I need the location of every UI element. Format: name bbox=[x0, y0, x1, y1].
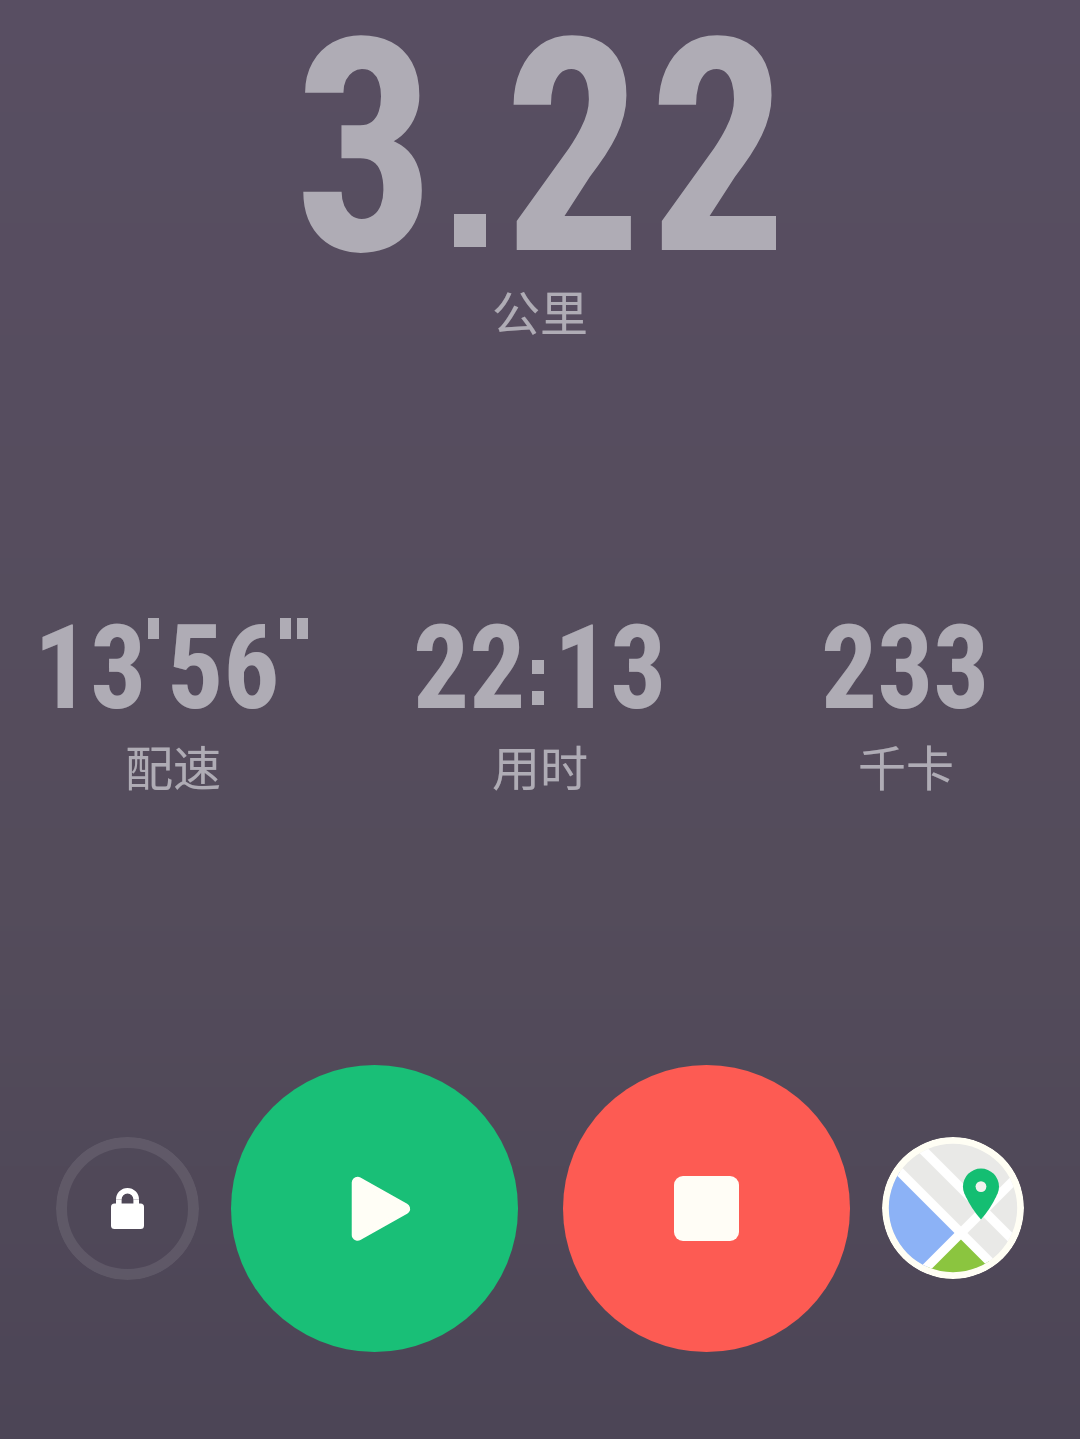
staticText: 22 bbox=[413, 600, 526, 736]
button[interactable]: Stop run bbox=[563, 1065, 850, 1352]
staticText: 用时 bbox=[492, 730, 589, 800]
staticText: 13 bbox=[554, 600, 667, 736]
staticText: 13 bbox=[34, 600, 147, 736]
button[interactable]: Resume run bbox=[231, 1065, 518, 1352]
staticText: 56 bbox=[167, 600, 280, 736]
staticText: 千卡 bbox=[858, 730, 955, 800]
button[interactable]: Map bbox=[882, 1137, 1024, 1279]
staticText: 公里 bbox=[492, 275, 589, 345]
staticText: 233 bbox=[821, 600, 990, 736]
staticText: 3 bbox=[294, 0, 436, 323]
staticText: 22 bbox=[504, 0, 795, 323]
button[interactable]: Lock screen bbox=[56, 1137, 199, 1280]
staticText: 配速 bbox=[125, 730, 222, 800]
